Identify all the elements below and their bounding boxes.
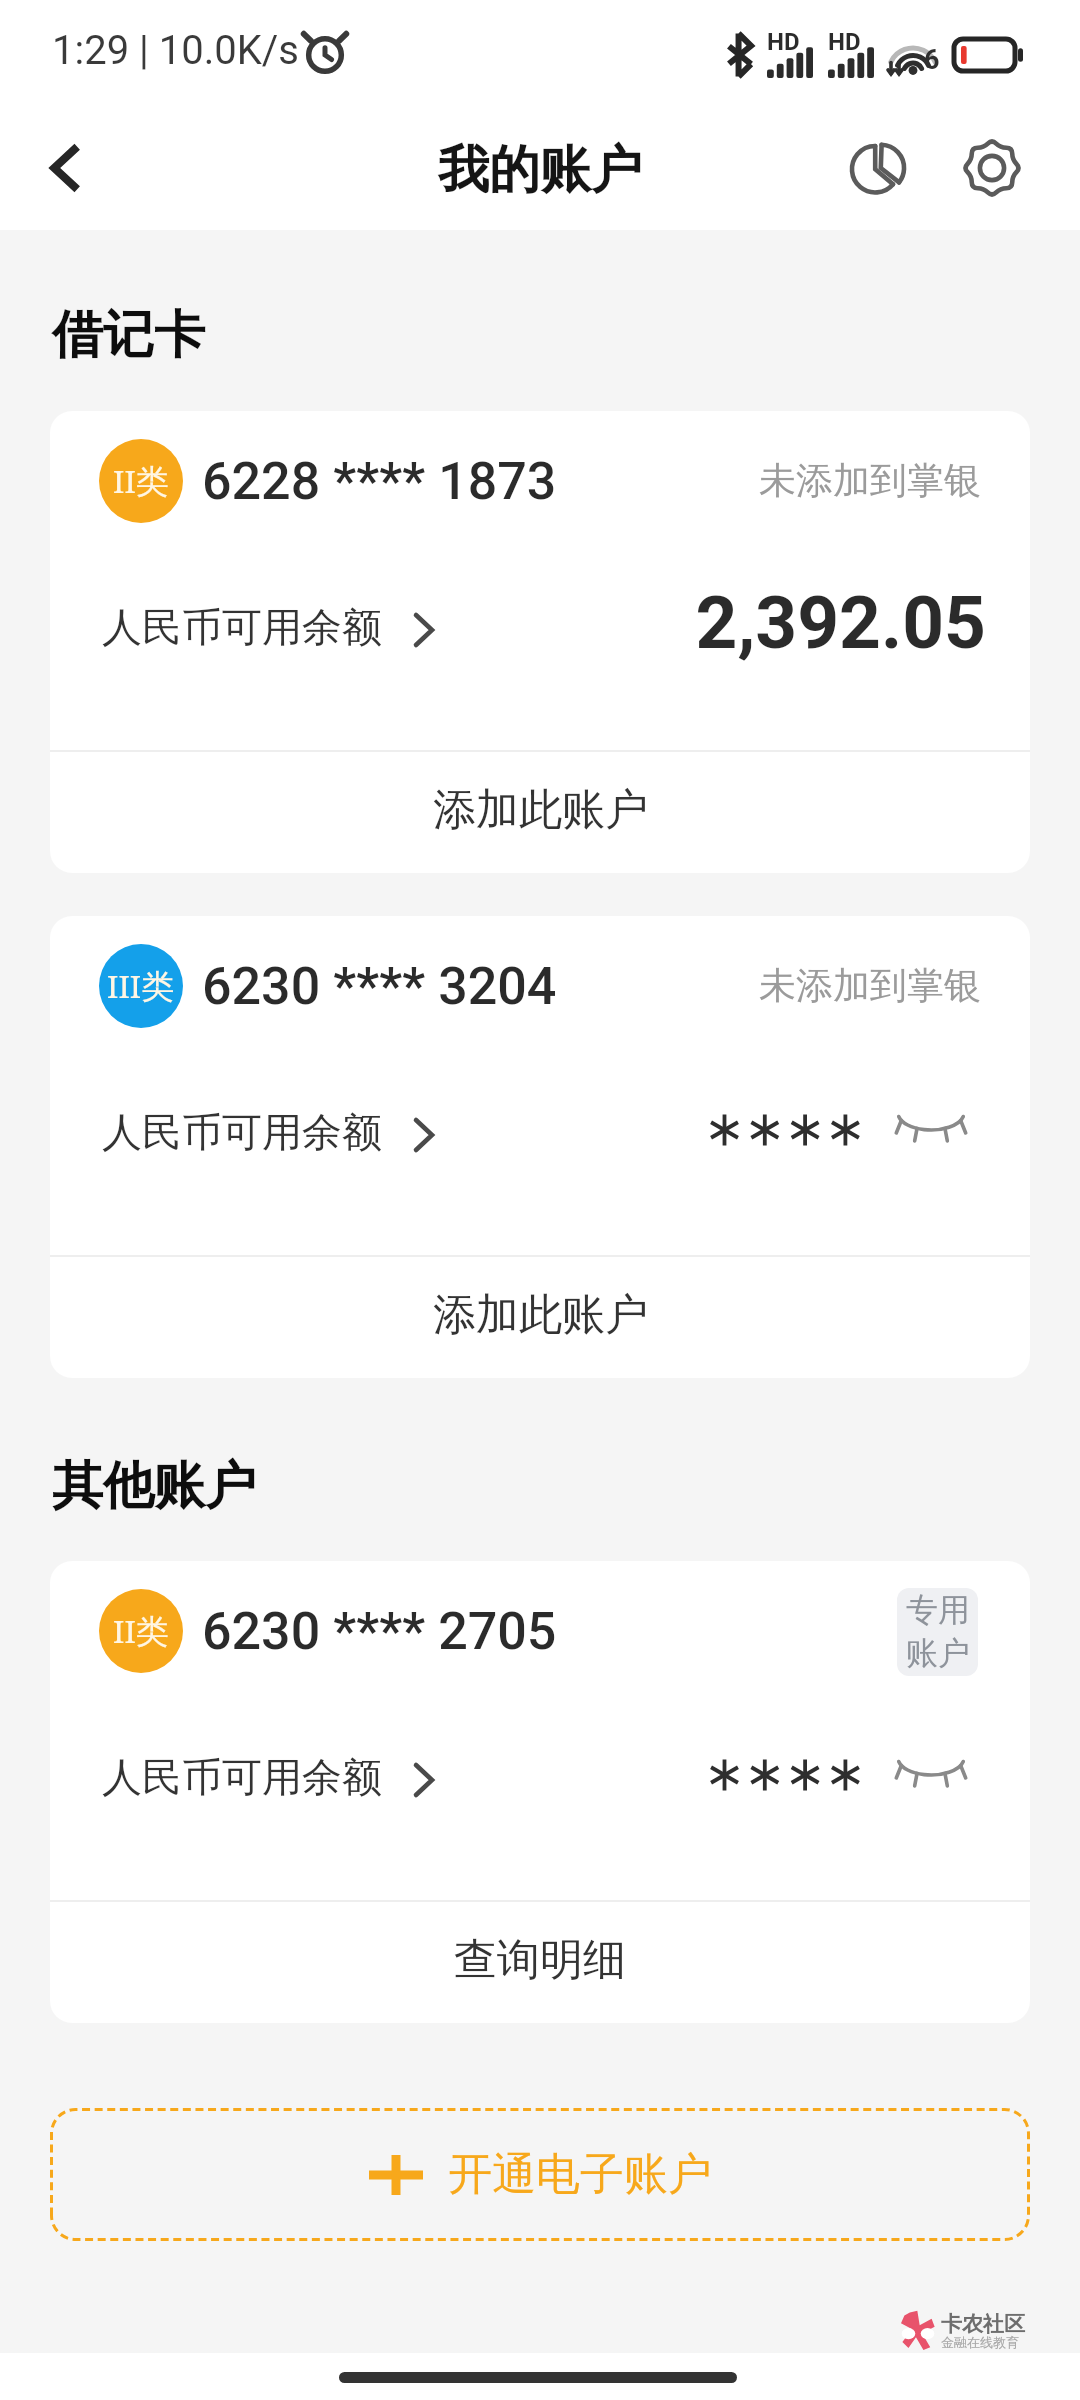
staticText: II类 [113, 460, 169, 503]
button[interactable]: II类 [50, 411, 1030, 750]
staticText: 6230 **** 2705 [202, 1601, 557, 1662]
staticText: 人民币可用余额 [102, 1107, 382, 1157]
staticText: 我的账户 [438, 138, 642, 202]
staticText: HD [828, 28, 861, 56]
staticText: HD [767, 28, 800, 56]
button[interactable]: 开通电子账户 [50, 2108, 1030, 2241]
button[interactable]: II类 [50, 1561, 1030, 1900]
staticText: 其他账户 [52, 1454, 256, 1518]
staticText: III类 [107, 965, 175, 1008]
staticText: 金融在线教育 [941, 2334, 1019, 2350]
button[interactable]: 添加此账户 [50, 752, 1030, 873]
button[interactable]: Settings [950, 126, 1034, 210]
staticText: 人民币可用余额 [102, 602, 382, 652]
button[interactable]: Statistics [836, 126, 920, 210]
button[interactable]: Back [24, 126, 108, 210]
staticText: 专用 账户 [906, 1590, 970, 1674]
staticText: II类 [113, 1610, 169, 1653]
staticText: 添加此账户 [433, 1288, 648, 1342]
button[interactable]: III类 [50, 916, 1030, 1255]
staticText: 开通电子账户 [448, 2147, 712, 2202]
staticText: 未添加到掌银 [759, 962, 981, 1009]
staticText: 6 [924, 44, 940, 76]
staticText: 6228 **** 1873 [202, 451, 557, 512]
staticText: 2,392.05 [638, 580, 986, 666]
staticText: 人民币可用余额 [102, 1752, 382, 1802]
staticText: 添加此账户 [433, 783, 648, 837]
staticText: 查询明细 [454, 1933, 626, 1987]
staticText: 借记卡 [52, 303, 205, 367]
staticText: 1:29 | 10.0K/s [52, 27, 299, 74]
button[interactable]: 添加此账户 [50, 1257, 1030, 1378]
staticText: 卡农社区 [941, 2311, 1025, 2337]
button[interactable]: 查询明细 [50, 1902, 1030, 2023]
staticText: 6230 **** 3204 [202, 956, 557, 1017]
staticText: 未添加到掌银 [759, 457, 981, 504]
